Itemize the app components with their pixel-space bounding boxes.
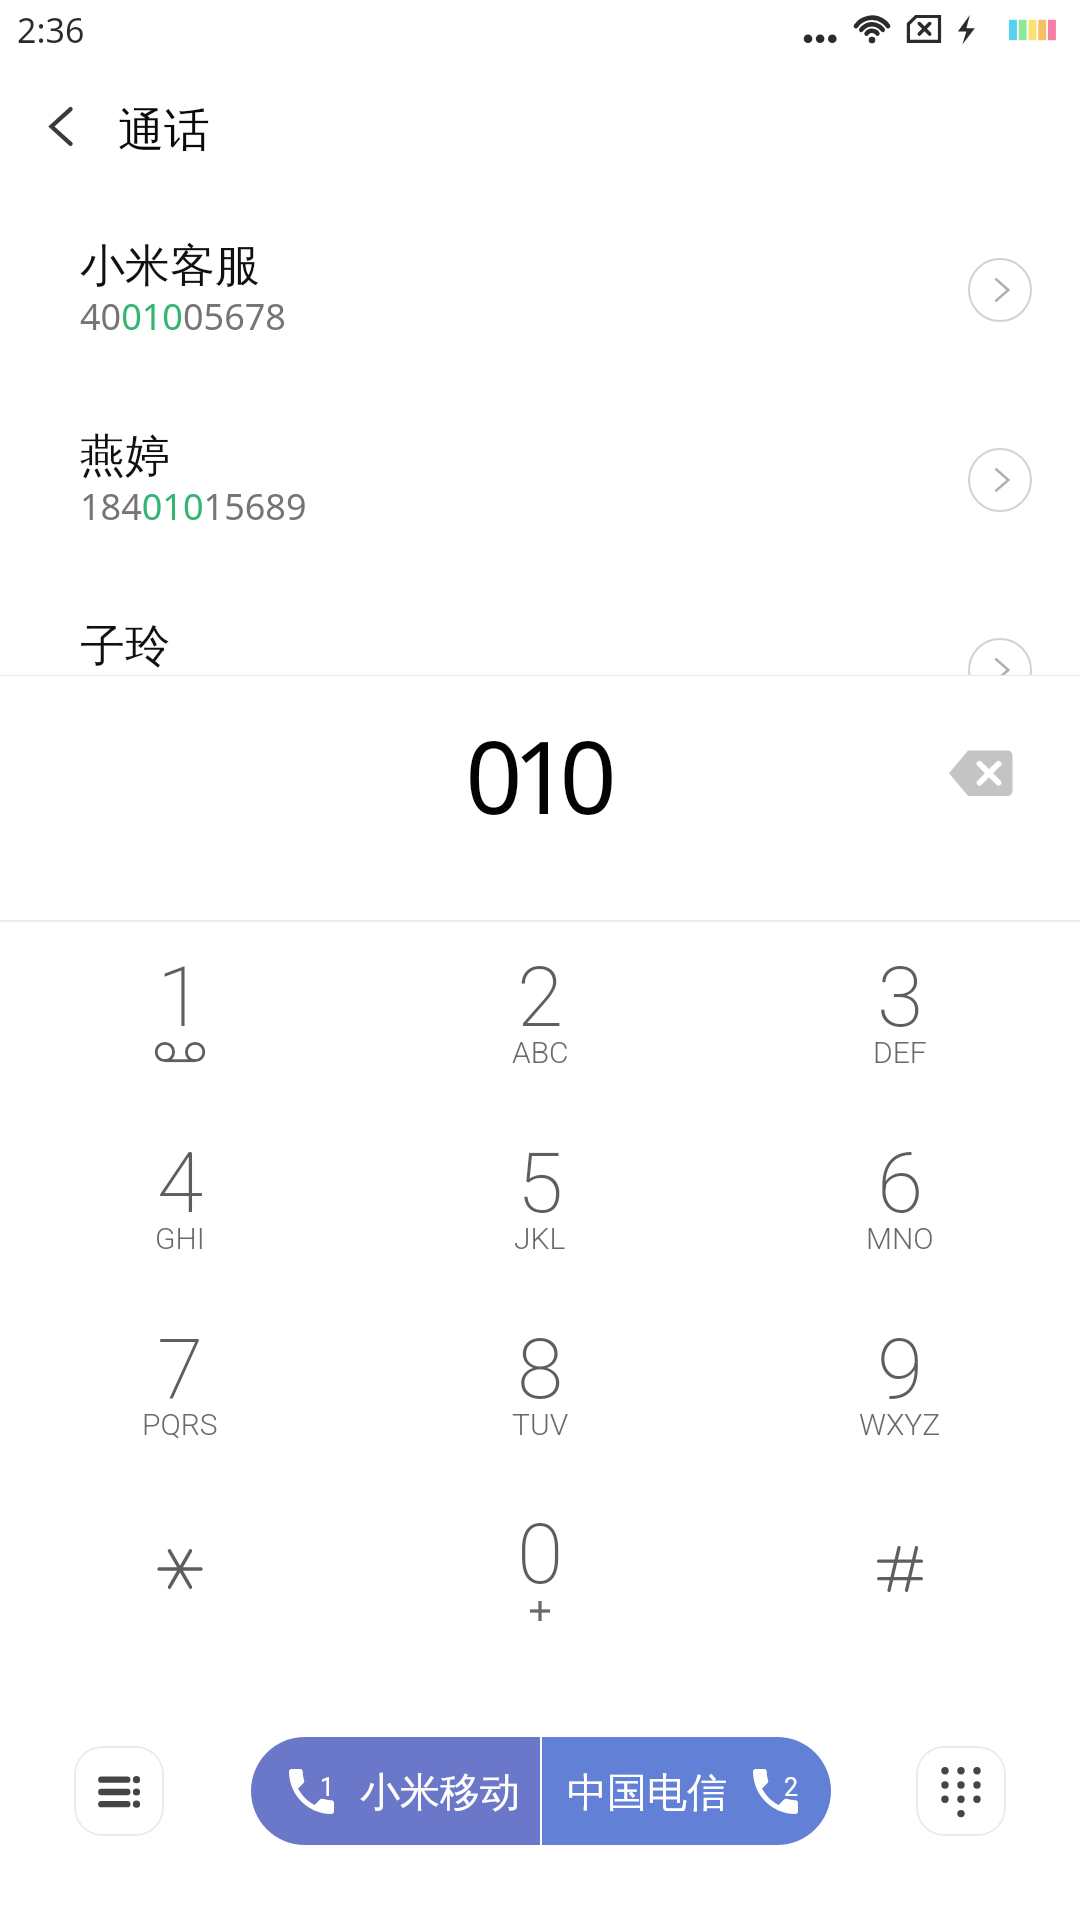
button[interactable]: Back [22, 80, 122, 180]
button[interactable]: Key 3 [740, 927, 1060, 1097]
staticText: 18401015689 [80, 482, 307, 531]
staticText: ABC [512, 1035, 569, 1070]
staticText: 中国电信 [567, 1767, 727, 1817]
button[interactable]: Key 9 [740, 1299, 1060, 1469]
staticText: 010 [0, 707, 1076, 843]
button[interactable]: Contact details [968, 448, 1032, 512]
staticText: 2 [784, 1773, 799, 1802]
staticText: WXYZ [859, 1407, 941, 1442]
button[interactable]: Call history [74, 1746, 164, 1836]
button[interactable]: 1 [251, 1737, 540, 1845]
staticText: 5 [517, 1134, 564, 1232]
button[interactable]: Contact details [968, 258, 1032, 322]
staticText: 通话 [118, 102, 210, 160]
button[interactable]: 小米客服 [0, 200, 1080, 390]
button[interactable]: Key 7 [20, 1299, 340, 1469]
button[interactable]: 子玲 [0, 580, 1080, 770]
staticText: DEF [873, 1035, 927, 1070]
button[interactable]: Key * [20, 1484, 340, 1654]
button[interactable]: Backspace [929, 741, 1033, 805]
staticText: 1 [157, 948, 204, 1046]
staticText: JKL [514, 1221, 566, 1256]
staticText: 子玲 [80, 618, 170, 675]
button[interactable]: Key # [740, 1484, 1060, 1654]
button[interactable]: Key 0 [380, 1484, 700, 1654]
staticText: 1 [320, 1773, 335, 1802]
staticText: 4 [157, 1134, 204, 1232]
staticText: 小米移动 [360, 1767, 520, 1817]
button[interactable]: Key 8 [380, 1299, 700, 1469]
staticText: 7 [157, 1320, 204, 1418]
staticText: 燕婷 [80, 428, 170, 485]
staticText: 2 [517, 948, 564, 1046]
staticText: 小米客服 [80, 238, 260, 295]
staticText: PQRS [142, 1407, 218, 1442]
staticText: TUV [512, 1407, 569, 1442]
staticText: 0 [517, 1505, 564, 1603]
button[interactable]: 燕婷 [0, 390, 1080, 580]
button[interactable]: 中国电信 [542, 1737, 831, 1845]
staticText: 6 [877, 1134, 924, 1232]
staticText: 8 [517, 1320, 564, 1418]
button[interactable]: Key 6 [740, 1113, 1060, 1283]
staticText: 4001005678 [80, 292, 286, 341]
button[interactable]: Dialpad [916, 1746, 1006, 1836]
button[interactable]: Contact details [968, 638, 1032, 702]
staticText: 2:36 [17, 7, 85, 53]
button[interactable]: Key 1 [20, 927, 340, 1097]
staticText: MNO [866, 1221, 934, 1256]
button[interactable]: Key 2 [380, 927, 700, 1097]
button[interactable]: Key 5 [380, 1113, 700, 1283]
staticText: 9 [877, 1320, 924, 1418]
button[interactable]: Key 4 [20, 1113, 340, 1283]
staticText: GHI [155, 1221, 205, 1256]
staticText: 3 [877, 948, 924, 1046]
